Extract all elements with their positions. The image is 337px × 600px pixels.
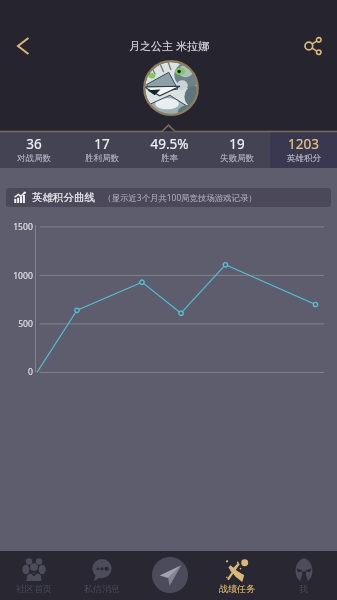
staticText: 1203 [288,135,319,153]
staticText: 英雄积分曲线 [32,191,95,204]
button[interactable]: Back [6,29,40,63]
button[interactable]: Hero avatar [143,60,199,116]
staticText: 英雄积分 [287,153,321,164]
staticText: （显示近3个月共100局竞技场游戏记录） [103,192,257,203]
button[interactable]: 17 [68,131,136,168]
staticText: 社区首页 [16,583,52,594]
staticText: 胜利局数 [85,153,119,164]
button[interactable]: 战绩任务 [203,551,270,600]
button[interactable]: 英雄积分曲线 [6,188,331,207]
button[interactable]: 36 [0,131,68,168]
staticText: 胜率 [161,153,178,164]
button[interactable]: 我 [270,551,337,600]
staticText: 失败局数 [220,153,254,164]
button[interactable]: 49.5% [136,131,203,168]
staticText: 月之公主 米拉娜 [129,38,209,53]
staticText: 战绩任务 [219,583,255,594]
staticText: 17 [94,135,110,153]
button[interactable]: 1203 [270,131,337,168]
button[interactable]: Share [296,29,330,63]
button[interactable]: 社区首页 [0,551,68,600]
staticText: 49.5% [150,135,189,153]
button[interactable]: 19 [203,131,270,168]
staticText: 500 [18,318,33,330]
staticText: 1000 [13,270,33,282]
staticText: 36 [26,135,42,153]
staticText: 我 [299,583,308,594]
staticText: 对战局数 [17,153,51,164]
staticText: 0 [28,366,33,378]
staticText: 19 [229,135,245,153]
staticText: 1500 [13,221,33,233]
staticText: 私信消息 [84,583,120,594]
button[interactable]: 私信消息 [68,551,136,600]
button[interactable]: Post [136,551,203,600]
